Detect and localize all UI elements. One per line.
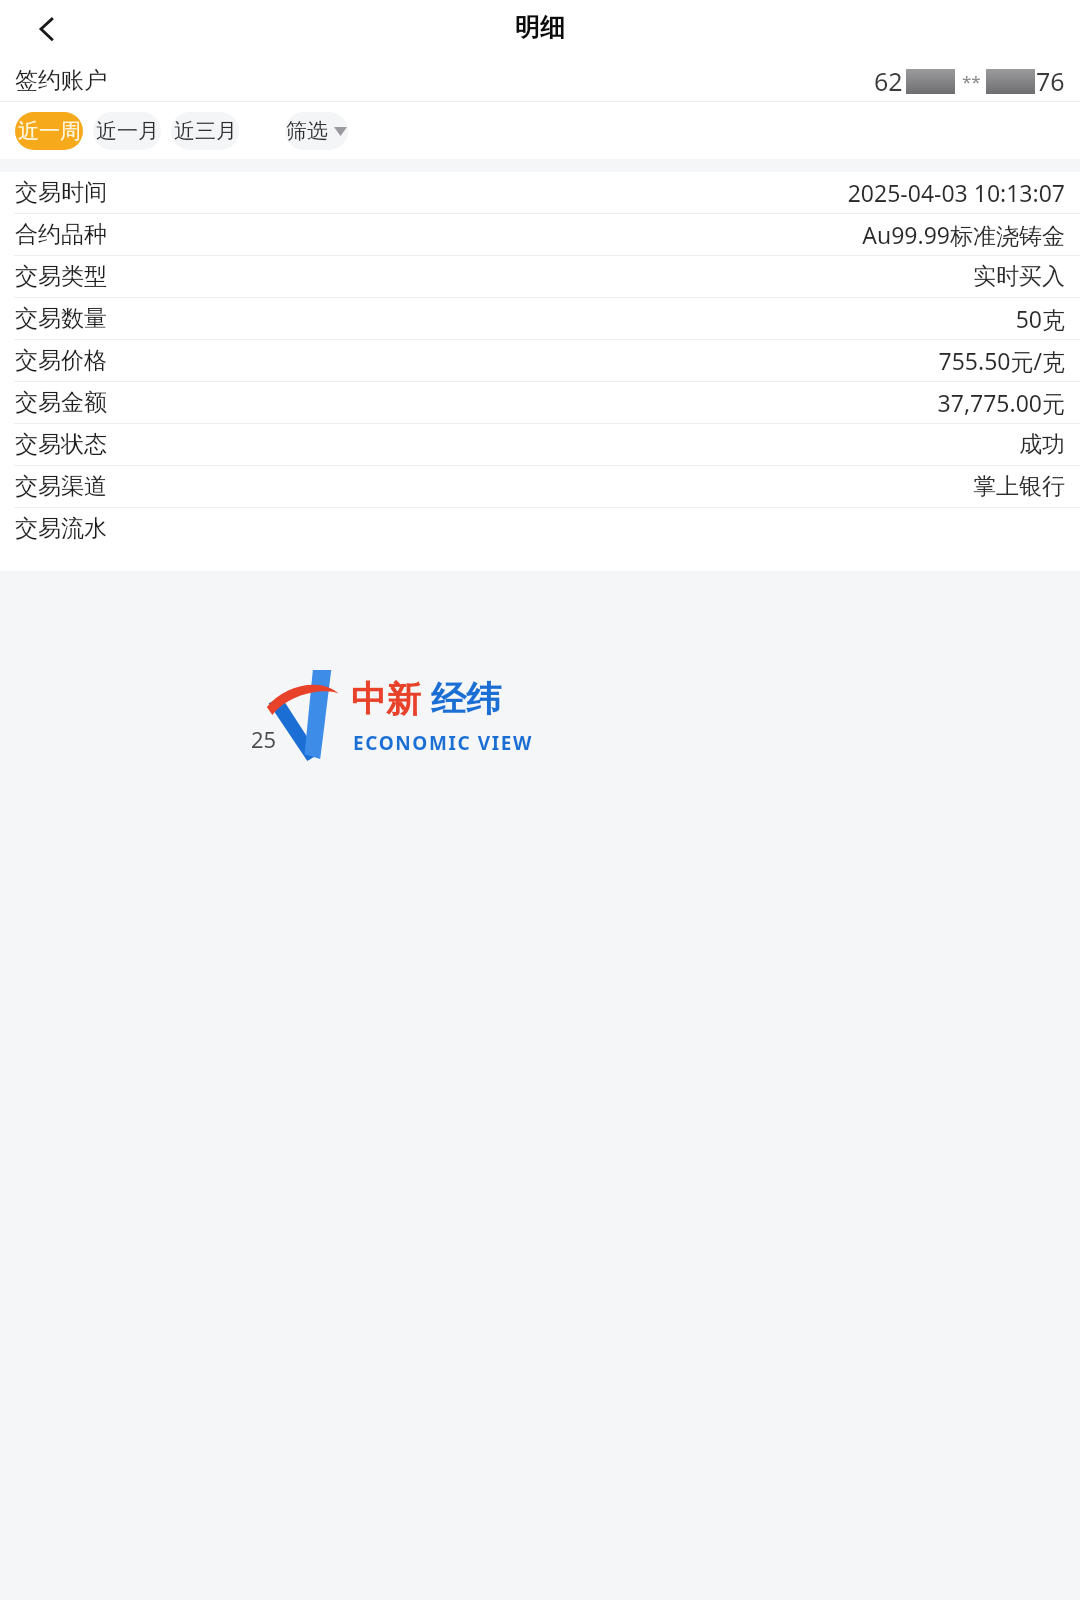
button[interactable]: 合约品种 (0, 214, 1080, 255)
button[interactable]: 交易流水 (0, 508, 1080, 549)
staticText: 755.50元/克 (938, 345, 1065, 376)
staticText: Au99.99标准浇铸金 (862, 219, 1065, 250)
button[interactable]: 近三月 (171, 112, 239, 150)
staticText: 经纬 (431, 677, 501, 721)
button[interactable]: 近一月 (93, 112, 161, 150)
button[interactable]: Back (20, 2, 74, 56)
staticText: 掌上银行 (973, 472, 1065, 501)
staticText: 近一月 (96, 118, 159, 144)
staticText: 交易价格 (15, 346, 107, 375)
button[interactable]: 近一周 (15, 112, 83, 150)
button[interactable]: 交易状态 (0, 424, 1080, 465)
button[interactable]: 签约账户 (0, 58, 1080, 101)
staticText: 交易渠道 (15, 472, 107, 501)
staticText: 近一周 (18, 118, 81, 144)
button[interactable]: 交易数量 (0, 298, 1080, 339)
staticText: 签约账户 (15, 66, 107, 95)
staticText: 交易数量 (15, 304, 107, 333)
staticText: 明细 (515, 12, 565, 43)
button[interactable]: 交易类型 (0, 256, 1080, 297)
staticText: 2025-04-03 10:13:07 (847, 177, 1065, 208)
staticText: 37,775.00元 (937, 387, 1065, 418)
staticText: 中新 (351, 677, 421, 721)
staticText: 50克 (1015, 303, 1065, 334)
staticText: 交易类型 (15, 262, 107, 291)
staticText: 交易时间 (15, 178, 107, 207)
staticText: ECONOMIC VIEW (353, 730, 533, 756)
staticText: 交易流水 (15, 514, 107, 543)
button[interactable]: 交易金额 (0, 382, 1080, 423)
staticText: 62 (874, 64, 903, 98)
button[interactable]: 筛选 (285, 112, 348, 150)
staticText: 实时买入 (973, 262, 1065, 291)
staticText: 交易状态 (15, 430, 107, 459)
staticText: 筛选 (286, 118, 328, 144)
button[interactable]: 交易价格 (0, 340, 1080, 381)
staticText: 76 (1036, 64, 1065, 98)
staticText: ** (962, 70, 981, 93)
staticText: 25 (251, 724, 277, 754)
staticText: 成功 (1019, 430, 1065, 459)
button[interactable]: 交易时间 (0, 172, 1080, 213)
staticText: 近三月 (174, 118, 237, 144)
button[interactable]: 交易渠道 (0, 466, 1080, 507)
staticText: 合约品种 (15, 220, 107, 249)
staticText: 交易金额 (15, 388, 107, 417)
